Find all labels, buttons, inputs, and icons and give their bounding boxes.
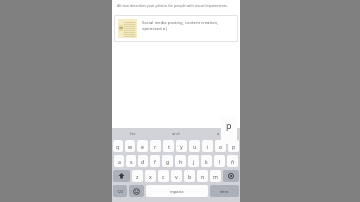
button[interactable]: g [162, 155, 173, 167]
button[interactable]: i [202, 140, 213, 152]
staticText: intro [220, 189, 229, 194]
staticText: y [180, 143, 183, 150]
staticText: Social media posting, content creation, … [142, 20, 234, 32]
button[interactable]: ñ [227, 155, 238, 167]
button[interactable]: n [197, 170, 208, 182]
other: p key preview [221, 116, 237, 144]
staticText: x [149, 173, 152, 180]
button[interactable]: r [150, 140, 161, 152]
button[interactable]: v [171, 170, 182, 182]
button[interactable]: Emoji [129, 185, 144, 197]
staticText: z [136, 173, 139, 180]
button[interactable]: s [126, 155, 136, 167]
button[interactable]: 123 [113, 185, 127, 197]
button[interactable]: k [201, 155, 212, 167]
staticText: espacio [170, 189, 184, 194]
staticText: i [207, 143, 209, 150]
staticText: g [166, 158, 170, 165]
staticText: e [141, 143, 144, 150]
staticText: Alt text describes your photos for peopl… [117, 3, 228, 8]
button[interactable]: w [125, 140, 135, 152]
button[interactable]: l [214, 155, 225, 167]
staticText: q [116, 143, 120, 150]
staticText: a [118, 158, 121, 165]
button[interactable]: j [188, 155, 199, 167]
staticText: j [193, 158, 195, 165]
button[interactable]: p [228, 140, 239, 152]
staticText: f [154, 158, 156, 165]
button[interactable]: Shift [113, 170, 130, 182]
staticText: 123 [117, 189, 124, 194]
button[interactable]: a [197, 128, 240, 139]
staticText: a [217, 131, 220, 137]
button[interactable]: a [114, 155, 124, 167]
staticText: b [188, 173, 192, 180]
button[interactable]: intro [210, 185, 239, 197]
button[interactable]: q [113, 140, 123, 152]
button[interactable]: y [176, 140, 187, 152]
staticText: t [168, 143, 170, 150]
button[interactable]: Backspace [223, 170, 239, 182]
button[interactable]: o [215, 140, 226, 152]
staticText: w [128, 143, 133, 150]
button[interactable]: h [175, 155, 186, 167]
staticText: l [219, 158, 221, 165]
staticText: k [205, 158, 208, 165]
button[interactable]: f [150, 155, 160, 167]
staticText: n [201, 173, 205, 180]
button[interactable]: x [145, 170, 156, 182]
button[interactable]: espacio [146, 185, 208, 197]
staticText: and [172, 131, 180, 137]
staticText: p [232, 143, 236, 150]
staticText: ñ [231, 158, 235, 165]
staticText: for [130, 131, 136, 137]
button[interactable]: t [163, 140, 174, 152]
button[interactable]: b [184, 170, 195, 182]
button[interactable]: m [210, 170, 221, 182]
button[interactable]: e [137, 140, 148, 152]
button[interactable]: u [189, 140, 200, 152]
staticText: d [141, 158, 145, 165]
staticText: s [130, 158, 133, 165]
staticText: u [193, 143, 197, 150]
staticText: r [154, 143, 157, 150]
button[interactable]: d [138, 155, 148, 167]
staticText: h [179, 158, 183, 165]
staticText: v [175, 173, 178, 180]
button[interactable]: c [158, 170, 169, 182]
button[interactable]: and [154, 128, 197, 139]
button[interactable]: for [112, 128, 154, 139]
staticText: p [226, 119, 232, 131]
staticText: o [219, 143, 223, 150]
staticText: m [213, 173, 218, 180]
button[interactable]: Social media posting, content creation, … [114, 15, 238, 42]
staticText: c [162, 173, 165, 180]
button[interactable]: z [132, 170, 143, 182]
